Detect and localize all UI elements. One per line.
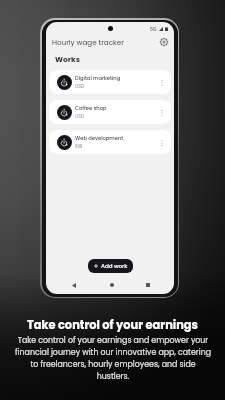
staticText: USD (75, 83, 85, 90)
staticText: Hourly wage tracker (52, 37, 124, 47)
staticText: 5G (150, 26, 157, 32)
staticText: Take control of your earnings and empowe… (14, 335, 212, 381)
button[interactable]: Add work (88, 259, 133, 273)
button[interactable]: Back (67, 278, 81, 292)
staticText: USD (75, 113, 85, 120)
staticText: Web development (75, 135, 124, 142)
staticText: Add work (101, 262, 128, 270)
staticText: INR (75, 143, 83, 150)
button[interactable]: Recents (141, 278, 155, 292)
staticText: Coffee shop (75, 105, 107, 112)
staticText: Take control of your earnings (27, 317, 198, 333)
button[interactable]: Digital marketing (49, 70, 171, 94)
button[interactable]: More options (156, 77, 167, 88)
staticText: Works (55, 54, 81, 65)
button[interactable]: More options (156, 137, 167, 148)
button[interactable]: More options (156, 107, 167, 118)
button[interactable]: Home (105, 278, 119, 292)
staticText: Digital marketing (75, 75, 121, 82)
button[interactable]: Web development (49, 130, 171, 154)
button[interactable]: Coffee shop (49, 100, 171, 124)
button[interactable]: Settings (158, 36, 169, 47)
